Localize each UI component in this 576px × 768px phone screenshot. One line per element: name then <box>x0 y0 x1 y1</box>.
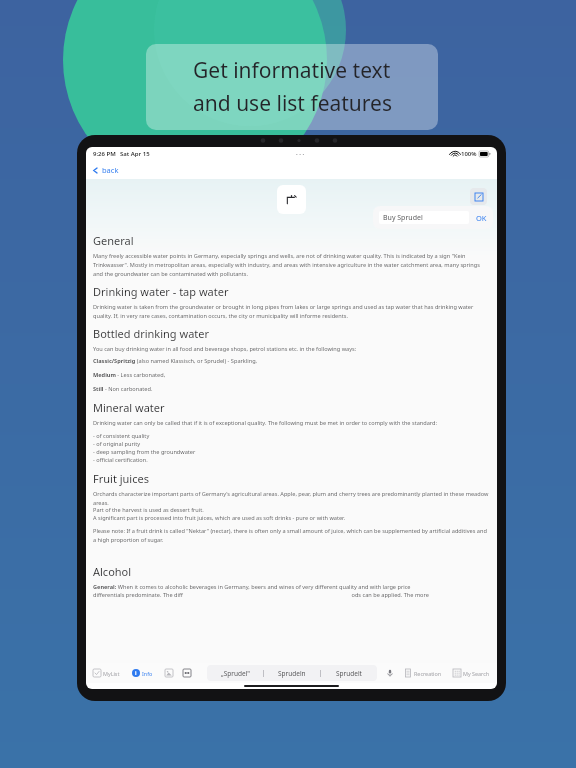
staticText: - of consistent quality <box>93 432 490 440</box>
staticText: - official certification. <box>93 456 490 464</box>
button[interactable]: Compose <box>470 188 487 205</box>
staticText: Drinking water - tap water <box>93 284 229 299</box>
staticText: back <box>102 165 119 175</box>
staticText: 100% <box>461 150 477 158</box>
staticText: OK <box>476 213 487 223</box>
staticText: - deep sampling from the groundwater <box>93 448 490 456</box>
button[interactable]: OK <box>476 213 487 223</box>
button[interactable]: „Sprudel" <box>207 665 263 681</box>
button[interactable]: Recreation <box>403 669 443 677</box>
staticText: Still - Non carbonated. <box>93 385 490 393</box>
staticText: A significant part is processed into fru… <box>93 514 490 522</box>
button[interactable]: Buy Sprudel <box>383 211 469 224</box>
staticText: Info <box>142 670 153 677</box>
staticText: · · · <box>296 150 305 158</box>
button[interactable]: Photo <box>164 668 174 678</box>
staticText: General: When it comes to alcoholic beve… <box>93 583 490 591</box>
staticText: Drinking water can only be called that i… <box>93 419 490 427</box>
staticText: Sprudelt <box>336 669 362 678</box>
staticText: Drinking water is taken from the groundw… <box>93 303 490 319</box>
staticText: differentials predominate. The diff ods … <box>93 591 490 599</box>
button[interactable]: My Search <box>452 669 491 677</box>
button[interactable]: Tap water <box>277 185 306 214</box>
staticText: Orchards characterize important parts of… <box>93 490 490 506</box>
staticText: - of original purity <box>93 440 490 448</box>
button[interactable]: Microphone <box>385 668 395 678</box>
staticText: Mineral water <box>93 400 165 415</box>
button[interactable]: Translate <box>182 668 192 678</box>
staticText: Alcohol <box>93 564 132 579</box>
staticText: Sprudeln <box>278 669 306 678</box>
button[interactable]: Sprudelt <box>321 665 377 681</box>
button[interactable]: back <box>92 161 497 179</box>
staticText: Medium - Less carbonated, <box>93 371 490 379</box>
staticText: „Sprudel" <box>221 669 250 678</box>
staticText: MyList <box>103 670 120 677</box>
staticText: You can buy drinking water in all food a… <box>93 345 490 353</box>
staticText: General <box>93 233 134 248</box>
staticText: Many freely accessible water points in G… <box>93 252 490 277</box>
staticText: Classic/Spritzig (also named Klassisch, … <box>93 357 490 365</box>
staticText: Part of the harvest is used as dessert f… <box>93 506 490 514</box>
button[interactable]: Sprudeln <box>264 665 320 681</box>
staticText: 9:26 PM <box>93 150 116 158</box>
staticText: Sat Apr 15 <box>120 150 150 158</box>
staticText: Please note: If a fruit drink is called … <box>93 527 490 543</box>
staticText: Buy Sprudel <box>383 213 423 223</box>
staticText: Bottled drinking water <box>93 326 210 341</box>
staticText: and use list features <box>193 89 392 118</box>
staticText: Get informative text <box>193 56 391 85</box>
button[interactable]: MyList <box>92 669 121 677</box>
staticText: i <box>135 670 137 677</box>
staticText: Recreation <box>414 670 442 677</box>
staticText: My Search <box>463 670 490 677</box>
button[interactable]: i <box>131 669 154 677</box>
staticText: Fruit juices <box>93 471 149 486</box>
